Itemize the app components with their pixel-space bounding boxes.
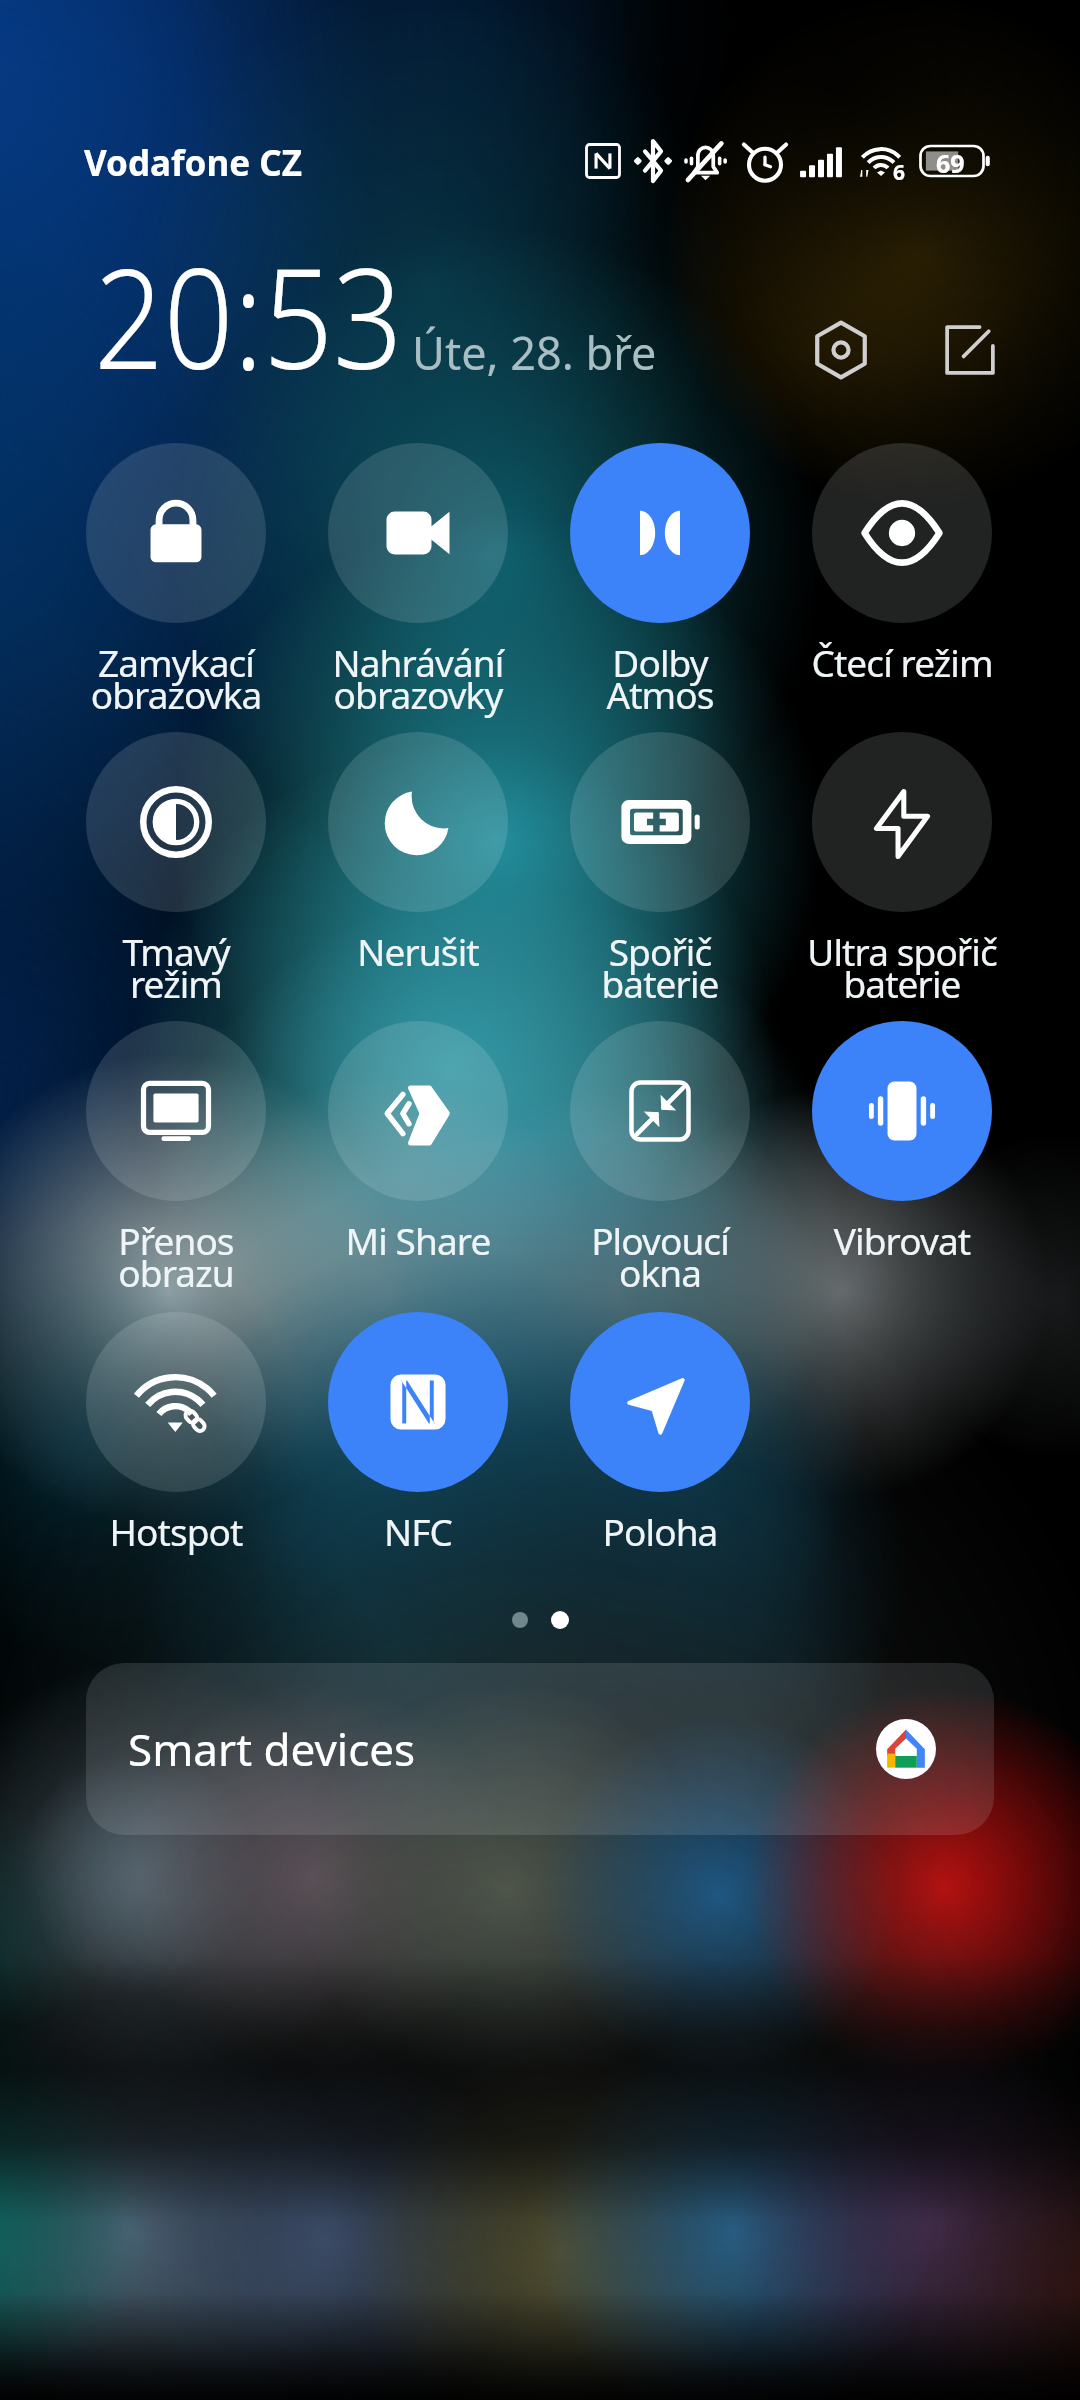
staticText: režim xyxy=(55,958,297,1008)
staticText: Poloha xyxy=(539,1506,781,1556)
staticText: 20:53 xyxy=(94,221,403,409)
staticText: Vibrovat xyxy=(781,1215,1023,1265)
staticText: Smart devices xyxy=(128,1719,416,1779)
staticText: 69 xyxy=(936,146,965,180)
button[interactable]: Settings xyxy=(806,315,876,385)
staticText: Nerušit xyxy=(297,926,539,976)
staticText: Úte, 28. bře xyxy=(412,322,657,383)
staticText: obrazovky xyxy=(297,669,539,719)
button[interactable]: Ultra spořič xyxy=(781,732,1023,1007)
button[interactable]: NFC xyxy=(297,1312,539,1587)
staticText: Spořič xyxy=(539,926,781,976)
staticText: Čtecí režim xyxy=(781,637,1023,687)
staticText: Dolby xyxy=(539,637,781,687)
button[interactable]: Vibrovat xyxy=(781,1021,1023,1296)
button[interactable]: Tmavý xyxy=(55,732,297,1007)
staticText: Ultra spořič xyxy=(781,926,1023,976)
staticText: baterie xyxy=(781,958,1023,1008)
button[interactable]: Poloha xyxy=(539,1312,781,1587)
staticText: Plovoucí xyxy=(539,1215,781,1265)
staticText: Hotspot xyxy=(55,1506,297,1556)
staticText: Mi Share xyxy=(297,1215,539,1265)
button[interactable]: Nahrávání xyxy=(297,443,539,718)
button[interactable]: Edit xyxy=(935,315,1005,385)
button[interactable]: Mi Share xyxy=(297,1021,539,1296)
button[interactable]: Spořič xyxy=(539,732,781,1007)
button[interactable]: Nerušit xyxy=(297,732,539,1007)
button[interactable]: Čtecí režim xyxy=(781,443,1023,718)
staticText: okna xyxy=(539,1247,781,1297)
button[interactable]: Přenos xyxy=(55,1021,297,1296)
button[interactable]: Plovoucí xyxy=(539,1021,781,1296)
staticText: Atmos xyxy=(539,669,781,719)
staticText: obrazovka xyxy=(55,669,297,719)
staticText: baterie xyxy=(539,958,781,1008)
staticText: Nahrávání xyxy=(297,637,539,687)
staticText: Vodafone CZ xyxy=(84,139,302,187)
staticText: Přenos xyxy=(55,1215,297,1265)
button[interactable]: Dolby xyxy=(539,443,781,718)
button[interactable]: Hotspot xyxy=(55,1312,297,1587)
button[interactable]: Smart devices xyxy=(86,1663,994,1835)
staticText: Tmavý xyxy=(55,926,297,976)
staticText: Zamykací xyxy=(55,637,297,687)
button[interactable]: Zamykací xyxy=(55,443,297,718)
staticText: obrazu xyxy=(55,1247,297,1297)
staticText: 6 xyxy=(893,158,906,187)
staticText: NFC xyxy=(297,1506,539,1556)
